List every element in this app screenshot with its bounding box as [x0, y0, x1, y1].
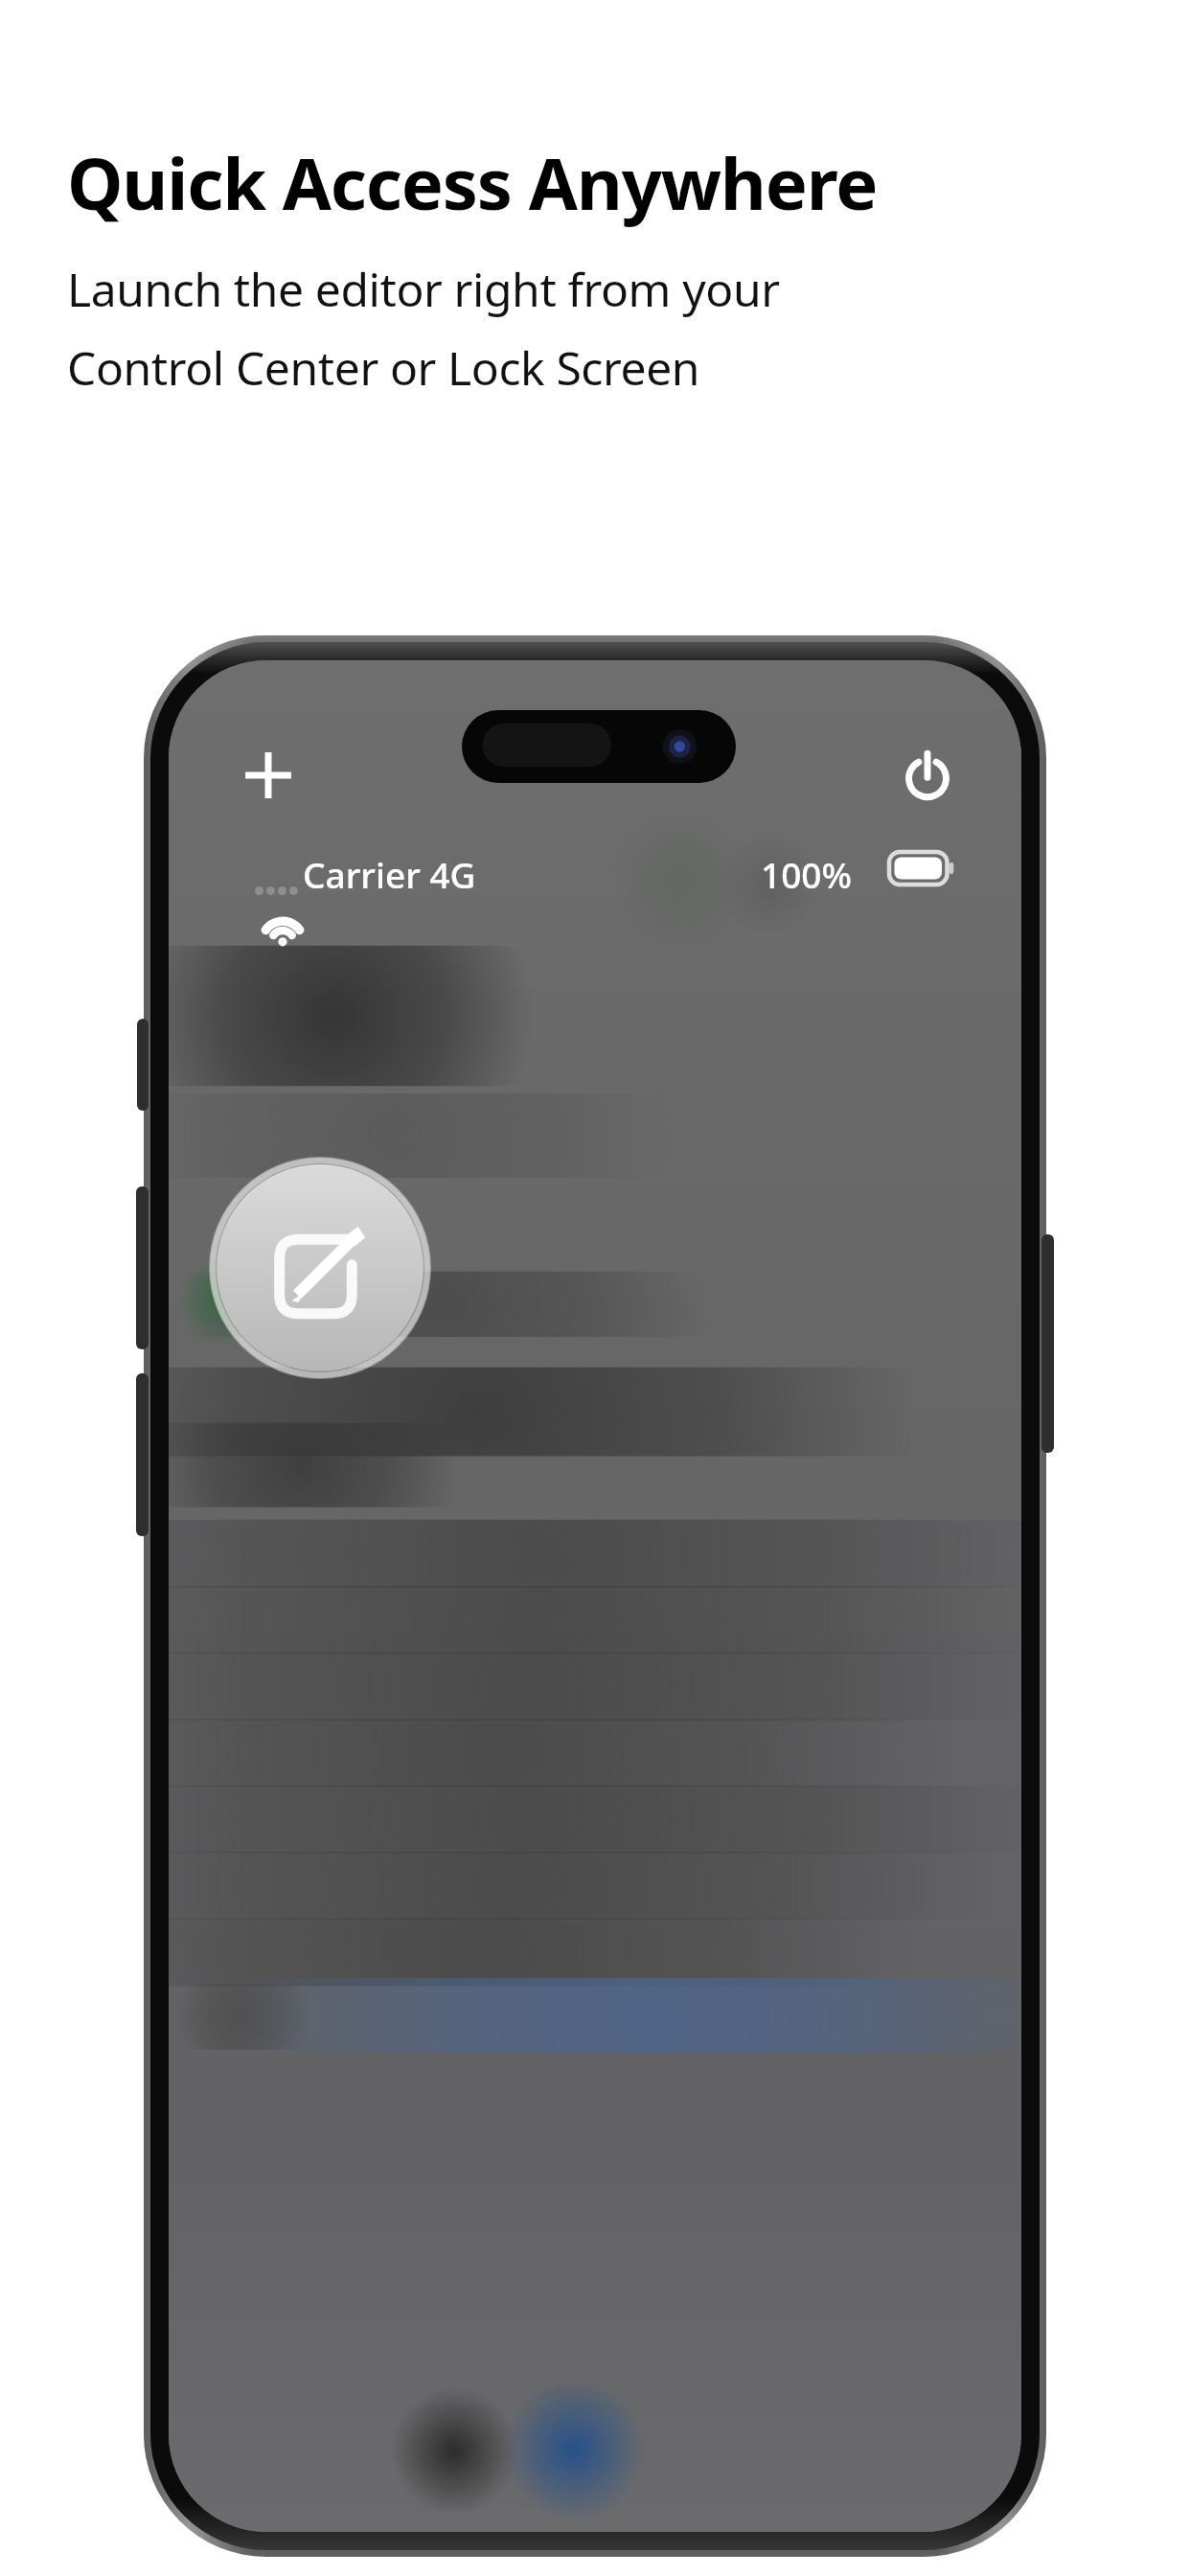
staticText: Carrier 4G [303, 850, 476, 898]
button[interactable]: Power [883, 731, 972, 819]
staticText: Launch the editor right from your Contro… [67, 258, 780, 399]
button[interactable]: Compose [209, 1157, 431, 1379]
staticText: Quick Access Anywhere [67, 134, 878, 231]
button[interactable]: Add [224, 731, 312, 819]
staticText: 100% [761, 850, 853, 898]
